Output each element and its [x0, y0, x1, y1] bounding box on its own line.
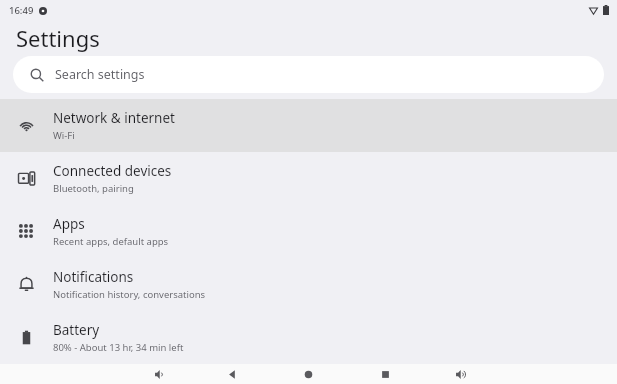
button[interactable]: Volume up [447, 364, 475, 384]
staticText: Search settings [55, 66, 145, 83]
staticText: Recent apps, default apps [53, 235, 169, 248]
button[interactable]: Back [218, 364, 246, 384]
staticText: Settings [16, 23, 100, 53]
button[interactable]: Connected devices [0, 152, 617, 205]
button[interactable]: Notifications [0, 258, 617, 311]
button[interactable]: Search settings [13, 56, 604, 93]
staticText: 80% - About 13 hr, 34 min left [53, 341, 184, 354]
staticText: Battery [53, 321, 100, 339]
staticText: Wi-Fi [53, 129, 75, 142]
button[interactable]: Network & internet [0, 99, 617, 152]
button[interactable]: Battery [0, 311, 617, 364]
staticText: 16:49 [9, 4, 34, 17]
staticText: Apps [53, 215, 85, 233]
button[interactable]: Apps [0, 205, 617, 258]
button[interactable]: Volume down [146, 364, 174, 384]
staticText: Notifications [53, 268, 134, 286]
staticText: Bluetooth, pairing [53, 182, 134, 195]
staticText: Connected devices [53, 162, 172, 180]
staticText: Notification history, conversations [53, 288, 206, 301]
button[interactable]: Home [294, 364, 322, 384]
button[interactable]: Recent apps [371, 364, 399, 384]
staticText: Network & internet [53, 109, 175, 127]
